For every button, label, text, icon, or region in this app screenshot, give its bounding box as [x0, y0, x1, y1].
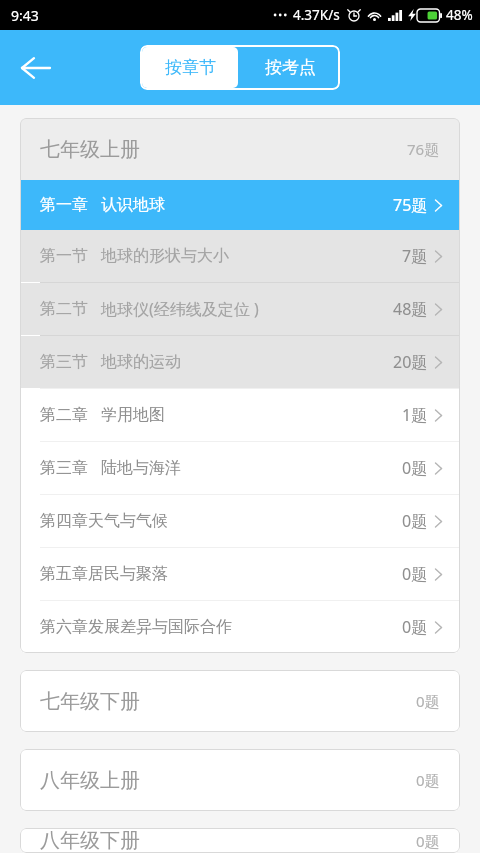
- button[interactable]: 第五章: [20, 548, 460, 600]
- staticText: 第一节: [40, 246, 88, 266]
- staticText: 1题: [402, 404, 428, 426]
- staticText: 20题: [393, 351, 428, 373]
- staticText: 第一章: [40, 195, 88, 215]
- staticText: 48%: [446, 6, 473, 24]
- staticText: 0题: [402, 510, 428, 532]
- staticText: 天气与气候: [88, 511, 168, 531]
- button[interactable]: 第二章: [20, 389, 460, 441]
- staticText: 0题: [416, 770, 440, 790]
- staticText: 0题: [402, 563, 428, 585]
- button[interactable]: 八年级上册: [20, 749, 460, 811]
- button[interactable]: 第二节: [20, 283, 460, 335]
- staticText: 9:43: [11, 6, 39, 25]
- staticText: 发展差异与国际合作: [88, 617, 232, 637]
- staticText: 0题: [402, 616, 428, 638]
- staticText: 0题: [416, 691, 440, 711]
- button[interactable]: 按章节: [142, 47, 238, 88]
- staticText: 八年级上册: [40, 768, 140, 793]
- staticText: 75题: [393, 194, 428, 216]
- staticText: 七年级下册: [40, 689, 140, 714]
- button[interactable]: 按考点: [240, 45, 340, 90]
- staticText: 地球的形状与大小: [101, 246, 229, 266]
- button[interactable]: Back: [8, 40, 64, 96]
- button[interactable]: 第四章: [20, 495, 460, 547]
- button[interactable]: 七年级下册: [20, 670, 460, 732]
- staticText: 第二节: [40, 299, 88, 319]
- staticText: 居民与聚落: [88, 564, 168, 584]
- staticText: 学用地图: [101, 405, 165, 425]
- staticText: 第五章: [40, 564, 88, 584]
- staticText: 第三章: [40, 458, 88, 478]
- staticText: 第六章: [40, 617, 88, 637]
- staticText: 按考点: [265, 57, 316, 78]
- staticText: 按章节: [165, 57, 216, 78]
- staticText: 第三节: [40, 352, 88, 372]
- staticText: 0题: [416, 831, 440, 851]
- staticText: 7题: [402, 245, 428, 267]
- button[interactable]: 第六章: [20, 601, 460, 653]
- button[interactable]: 七年级上册: [20, 118, 460, 180]
- button[interactable]: 八年级下册: [20, 828, 460, 853]
- staticText: 七年级上册: [40, 137, 140, 162]
- staticText: 第二章: [40, 405, 88, 425]
- staticText: 76题: [407, 139, 440, 159]
- staticText: 0题: [402, 457, 428, 479]
- button[interactable]: 第一节: [20, 230, 460, 282]
- button[interactable]: 第一章: [20, 180, 460, 230]
- staticText: 陆地与海洋: [101, 458, 181, 478]
- staticText: 4.37K/s: [293, 6, 340, 24]
- staticText: 48题: [393, 298, 428, 320]
- staticText: 认识地球: [101, 195, 165, 215]
- staticText: 地球仪(经纬线及定位 ): [101, 298, 259, 320]
- staticText: 地球的运动: [101, 352, 181, 372]
- staticText: 第四章: [40, 511, 88, 531]
- button[interactable]: 第三章: [20, 442, 460, 494]
- staticText: 八年级下册: [40, 828, 140, 853]
- button[interactable]: 第三节: [20, 336, 460, 388]
